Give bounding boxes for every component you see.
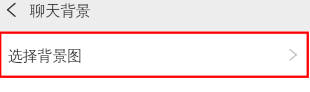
- staticText: 选择背景图: [8, 47, 289, 66]
- staticText: 聊天背景: [30, 1, 91, 20]
- button[interactable]: Back: [0, 0, 24, 22]
- button[interactable]: 选择背景图: [0, 31, 310, 77]
